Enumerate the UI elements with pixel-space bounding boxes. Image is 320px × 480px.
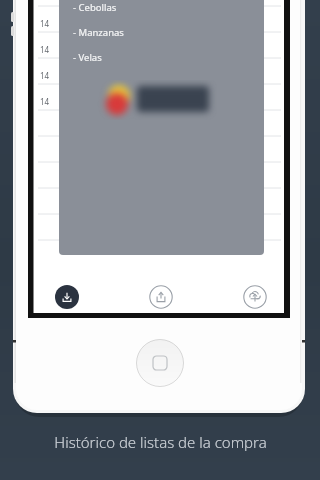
button[interactable]: - Cebollas	[59, 0, 264, 255]
staticText: 14	[40, 96, 50, 107]
staticText: 14	[40, 44, 50, 55]
staticText: - Cebollas	[73, 1, 117, 14]
staticText: Histórico de listas de la compra	[54, 432, 267, 452]
button[interactable]: Compartir lista	[149, 285, 173, 309]
staticText: - Velas	[73, 51, 102, 64]
button[interactable]: Descargar lista	[55, 285, 79, 309]
button[interactable]: Inicio	[136, 339, 184, 387]
staticText: - Manzanas	[73, 26, 124, 39]
staticText: 14	[40, 70, 50, 81]
button[interactable]: Subir a la nube	[243, 285, 267, 309]
staticText: 14	[40, 18, 50, 29]
